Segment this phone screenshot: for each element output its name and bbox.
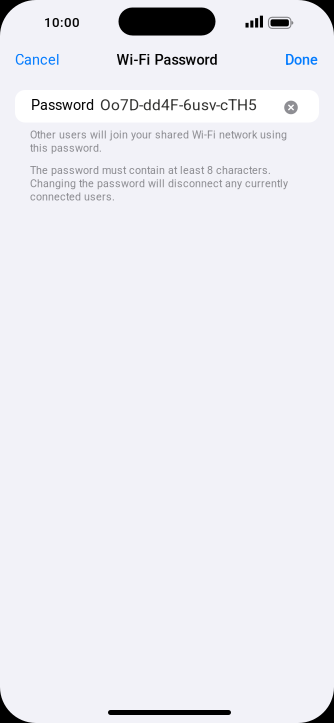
staticText: 10:00 xyxy=(44,15,80,30)
staticText: Password xyxy=(31,97,94,113)
button[interactable]: Clear text xyxy=(281,96,301,116)
button[interactable]: Done xyxy=(285,51,318,68)
staticText: Cancel xyxy=(15,51,60,68)
staticText: Other users will join your shared Wi-Fi … xyxy=(30,129,287,154)
staticText: The password must contain at least 8 cha… xyxy=(30,164,288,203)
staticText: Oo7D-dd4F-6usv-cTH5 xyxy=(100,96,257,114)
staticText: Done xyxy=(285,51,318,68)
staticText: Wi-Fi Password xyxy=(116,51,217,68)
button[interactable]: Cancel xyxy=(15,51,60,68)
textField[interactable]: Oo7D-dd4F-6usv-cTH5 xyxy=(100,96,281,114)
